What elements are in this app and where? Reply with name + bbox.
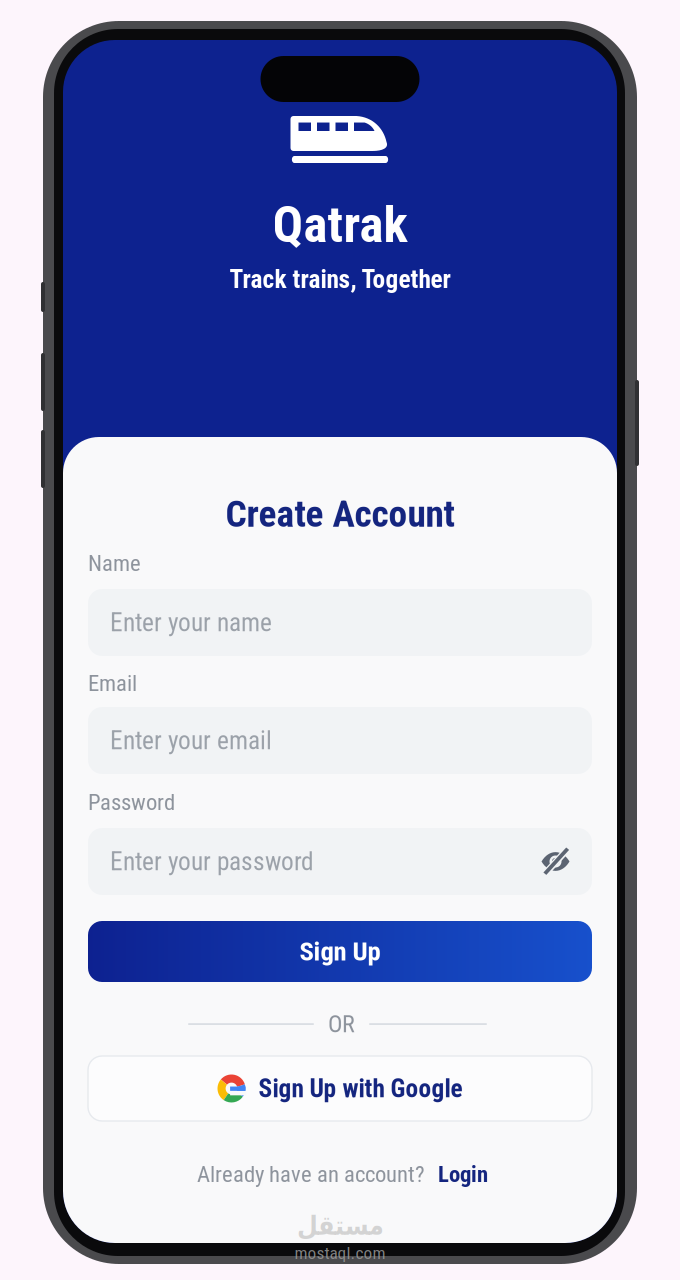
staticText: Sign Up <box>299 936 380 967</box>
staticText: Track trains, Together <box>229 264 450 294</box>
staticText: Email <box>88 670 137 697</box>
staticText: Sign Up with Google <box>258 1074 462 1103</box>
button[interactable]: Already have an account? <box>197 1161 488 1188</box>
staticText: Enter your name <box>110 608 272 637</box>
staticText: mostaql.com <box>294 1243 385 1263</box>
staticText: مستقل <box>296 1210 383 1241</box>
button[interactable]: Sign Up <box>88 921 592 982</box>
staticText: Create Account <box>225 492 454 536</box>
staticText: Already have an account? <box>197 1161 425 1188</box>
staticText: Qatrak <box>272 195 407 254</box>
staticText: OR <box>328 1010 355 1038</box>
staticText: Enter your email <box>110 726 272 755</box>
staticText: Enter your password <box>110 847 314 876</box>
staticText: Login <box>438 1161 488 1188</box>
button[interactable]: Sign Up with Google <box>88 1056 592 1121</box>
staticText: Password <box>88 789 175 816</box>
staticText: Name <box>88 550 141 577</box>
